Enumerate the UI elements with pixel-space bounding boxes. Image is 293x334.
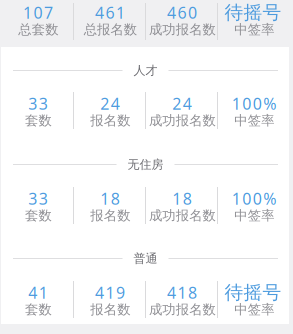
staticText: 报名数: [90, 112, 130, 129]
staticText: 24: [100, 93, 120, 114]
staticText: 报名数: [90, 207, 130, 224]
staticText: 中签率: [234, 112, 274, 129]
staticText: 100%: [232, 188, 276, 209]
staticText: 18: [172, 188, 192, 209]
staticText: 报名数: [90, 301, 130, 318]
staticText: 待摇号: [224, 1, 281, 24]
staticText: 总报名数: [84, 21, 137, 38]
staticText: 中签率: [234, 207, 274, 224]
staticText: 460: [167, 2, 197, 23]
staticText: 418: [167, 282, 197, 303]
staticText: 套数: [25, 301, 51, 318]
staticText: 套数: [25, 207, 51, 224]
staticText: 中签率: [234, 301, 274, 318]
staticText: 成功报名数: [149, 301, 215, 318]
staticText: 24: [172, 93, 192, 114]
staticText: 419: [95, 282, 125, 303]
staticText: 33: [28, 93, 48, 114]
staticText: 待摇号: [224, 281, 281, 304]
staticText: 33: [28, 188, 48, 209]
staticText: 100%: [232, 93, 276, 114]
staticText: 成功报名数: [149, 21, 215, 38]
staticText: 人才: [133, 63, 157, 78]
staticText: 461: [95, 2, 125, 23]
staticText: 总套数: [18, 21, 58, 38]
staticText: 套数: [25, 112, 51, 129]
staticText: 中签率: [234, 21, 274, 38]
staticText: 普通: [133, 251, 157, 266]
staticText: 成功报名数: [149, 207, 215, 224]
staticText: 无住房: [127, 157, 163, 172]
staticText: 成功报名数: [149, 112, 215, 129]
staticText: 18: [100, 188, 120, 209]
staticText: 107: [23, 2, 53, 23]
staticText: 41: [28, 282, 48, 303]
